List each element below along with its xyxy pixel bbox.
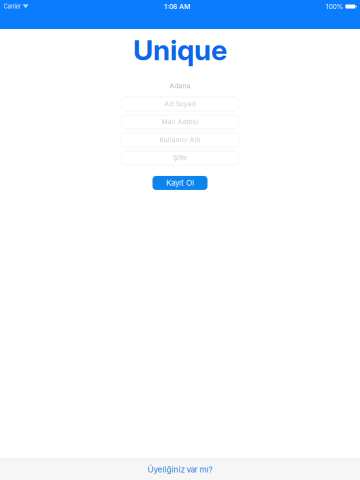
staticText: Kayıt Ol — [166, 178, 194, 188]
staticText: 100% — [326, 2, 344, 11]
staticText: Adana — [169, 82, 190, 90]
button[interactable]: Üyeliğiniz var mı? — [0, 458, 360, 480]
staticText: Mail Adresi — [161, 118, 198, 126]
staticText: Carrier — [3, 3, 20, 10]
staticText: Ad Soyad — [164, 100, 195, 108]
staticText: Kullanıcı Adı — [159, 136, 200, 144]
staticText: 1:06 AM — [164, 2, 190, 11]
staticText: Unique — [133, 33, 227, 67]
button[interactable]: Ad Soyad — [121, 97, 238, 111]
button[interactable]: Şifre — [121, 151, 238, 165]
button[interactable]: Mail Adresi — [121, 115, 238, 129]
button[interactable]: Kayıt Ol — [152, 176, 207, 190]
staticText: Şifre — [173, 154, 187, 162]
staticText: Üyeliğiniz var mı? — [147, 465, 212, 474]
button[interactable]: Kullanıcı Adı — [121, 133, 238, 147]
